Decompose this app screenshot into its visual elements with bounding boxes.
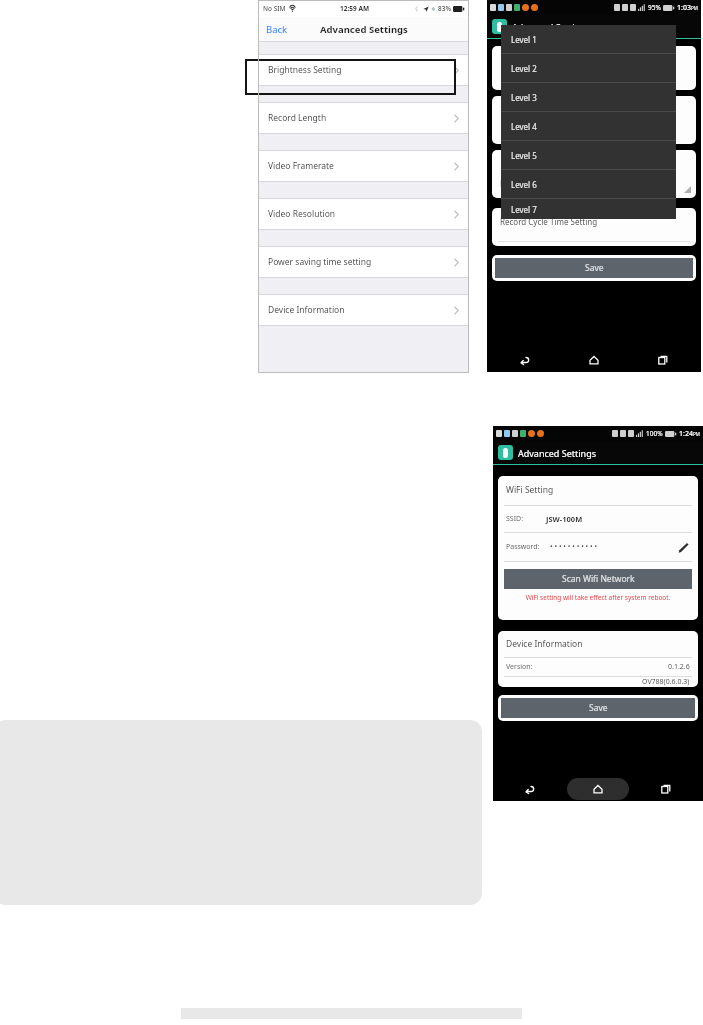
staticText: 1:24 — [679, 429, 693, 439]
staticText: SSID: — [506, 514, 524, 524]
staticText: Advanced Settings — [512, 21, 590, 33]
staticText: 0.1.2.6 — [668, 662, 690, 672]
staticText: Back — [266, 23, 288, 36]
button[interactable]: Level 5 — [501, 141, 676, 169]
staticText: PM — [693, 431, 700, 437]
staticText: 100% — [646, 429, 663, 438]
staticText: Brightness Setting — [268, 64, 342, 76]
staticText: Scan Wifi Network — [562, 573, 635, 585]
staticText: Level 6 — [511, 179, 537, 190]
staticText: Save — [589, 702, 608, 714]
staticText: WiFi Setting — [506, 484, 554, 496]
staticText: Device Information — [268, 304, 345, 316]
button[interactable]: Video Framerate — [258, 150, 469, 182]
staticText: Password: — [506, 542, 540, 552]
button[interactable]: Record Length — [258, 102, 469, 134]
staticText: Video Resolution — [268, 208, 336, 220]
staticText: Device Information — [506, 638, 583, 650]
button[interactable]: Home — [567, 778, 629, 800]
button[interactable]: Save — [501, 698, 695, 718]
staticText: WiFi setting will take effect after syst… — [498, 593, 698, 602]
staticText: • • • • • • • • • • • — [550, 542, 598, 552]
staticText: PM — [691, 5, 698, 11]
staticText: ☾ — [415, 5, 421, 12]
button[interactable]: Back — [505, 349, 545, 371]
staticText: Record Length — [268, 112, 327, 124]
staticText: Level 3 — [511, 92, 537, 103]
button[interactable]: Level 1 — [501, 25, 676, 53]
button[interactable]: Back — [510, 778, 550, 800]
staticText: Video Framerate — [268, 160, 334, 172]
staticText: JSW-100M — [546, 514, 583, 524]
staticText: 95% — [648, 3, 661, 12]
button[interactable]: Power saving time setting — [258, 246, 469, 278]
button[interactable]: Home — [563, 349, 625, 371]
staticText: Power saving time setting — [268, 256, 372, 268]
staticText: ✵ — [431, 6, 436, 12]
staticText: Level 1 — [511, 34, 537, 45]
button[interactable]: Brightness Setting — [258, 54, 469, 86]
staticText: 83% — [438, 4, 451, 13]
staticText: Level 2 — [511, 63, 537, 74]
button[interactable]: Recents — [646, 778, 686, 800]
staticText: 1:03 — [677, 3, 691, 13]
button[interactable]: Back — [258, 20, 296, 39]
staticText: Save — [585, 262, 604, 274]
staticText: 12:59 AM — [340, 4, 370, 13]
button[interactable]: Save — [495, 258, 693, 278]
button[interactable]: Level 6 — [501, 170, 676, 198]
button[interactable]: Recents — [643, 349, 683, 371]
button[interactable]: Level 2 — [501, 54, 676, 82]
staticText: Version: — [506, 662, 533, 672]
button[interactable]: Edit password — [676, 540, 690, 554]
staticText: OV788(0.6.0.3) — [642, 677, 690, 687]
button[interactable]: Level 3 — [501, 83, 676, 111]
staticText: Record Cycle Time Setting — [500, 216, 598, 227]
staticText: Advanced Settings — [320, 23, 408, 36]
button[interactable]: Level 4 — [501, 112, 676, 140]
button[interactable]: Video Resolution — [258, 198, 469, 230]
staticText: No SIM — [263, 4, 286, 13]
staticText: Level 7 — [511, 204, 537, 215]
staticText: Level 4 — [500, 178, 526, 189]
button[interactable]: Device Information — [258, 294, 469, 326]
staticText: Level 4 — [511, 121, 537, 132]
staticText: Level 5 — [511, 150, 537, 161]
button[interactable]: Level 7 — [501, 199, 676, 219]
button[interactable]: Scan Wifi Network — [504, 569, 692, 589]
staticText: Advanced Settings — [518, 447, 596, 459]
